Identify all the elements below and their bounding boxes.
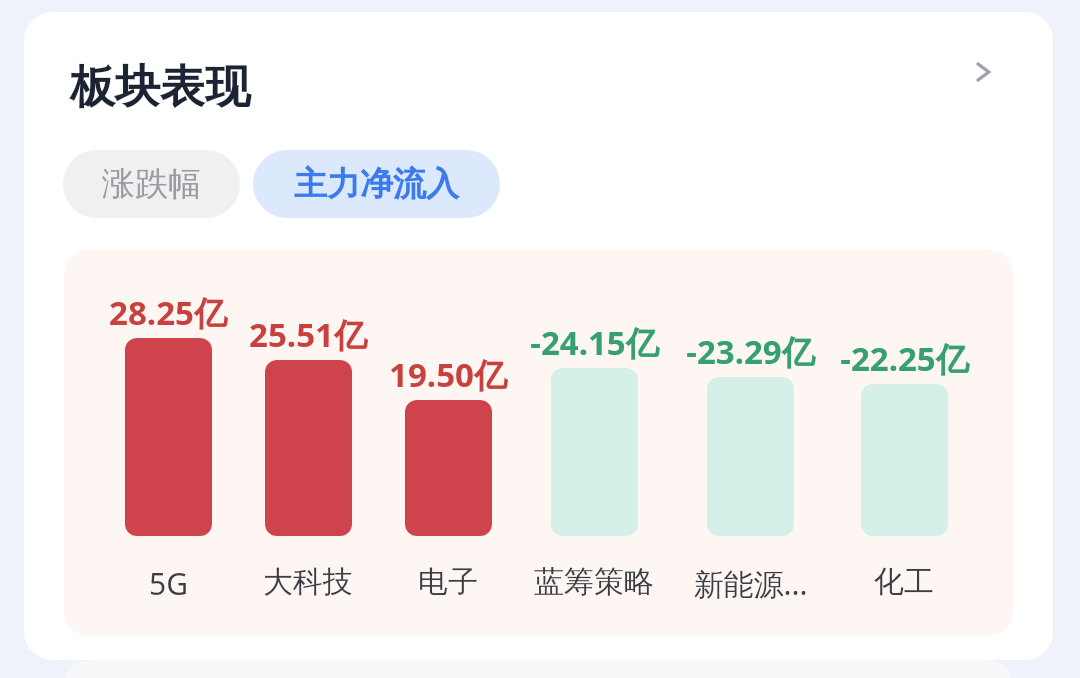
button[interactable] — [64, 249, 1013, 636]
staticText: 化工 — [874, 563, 934, 601]
button[interactable] — [405, 400, 492, 536]
staticText: -22.25亿 — [840, 336, 969, 381]
button[interactable]: More sector performance — [954, 42, 1014, 102]
staticText: 大科技 — [263, 563, 353, 601]
button[interactable]: 板块表现 — [24, 12, 1053, 132]
staticText: -23.29亿 — [686, 329, 815, 374]
staticText: 25.51亿 — [249, 312, 367, 357]
staticText: 电子 — [418, 563, 478, 601]
button[interactable] — [551, 368, 638, 536]
button[interactable] — [707, 377, 794, 536]
staticText: -24.15亿 — [530, 320, 659, 365]
button[interactable]: 主力净流入 — [253, 150, 500, 218]
staticText: 涨跌幅 — [102, 163, 201, 205]
button[interactable] — [861, 384, 948, 536]
staticText: 板块表现 — [70, 59, 250, 116]
button[interactable] — [125, 338, 212, 536]
button[interactable] — [265, 360, 352, 536]
button[interactable]: 涨跌幅 — [63, 150, 240, 218]
staticText: 19.50亿 — [389, 352, 507, 397]
staticText: 蓝筹策略 — [534, 563, 654, 601]
staticText: 5G — [149, 563, 188, 604]
staticText: 28.25亿 — [109, 290, 227, 335]
staticText: 新能源... — [693, 563, 808, 604]
staticText: 主力净流入 — [294, 163, 459, 205]
